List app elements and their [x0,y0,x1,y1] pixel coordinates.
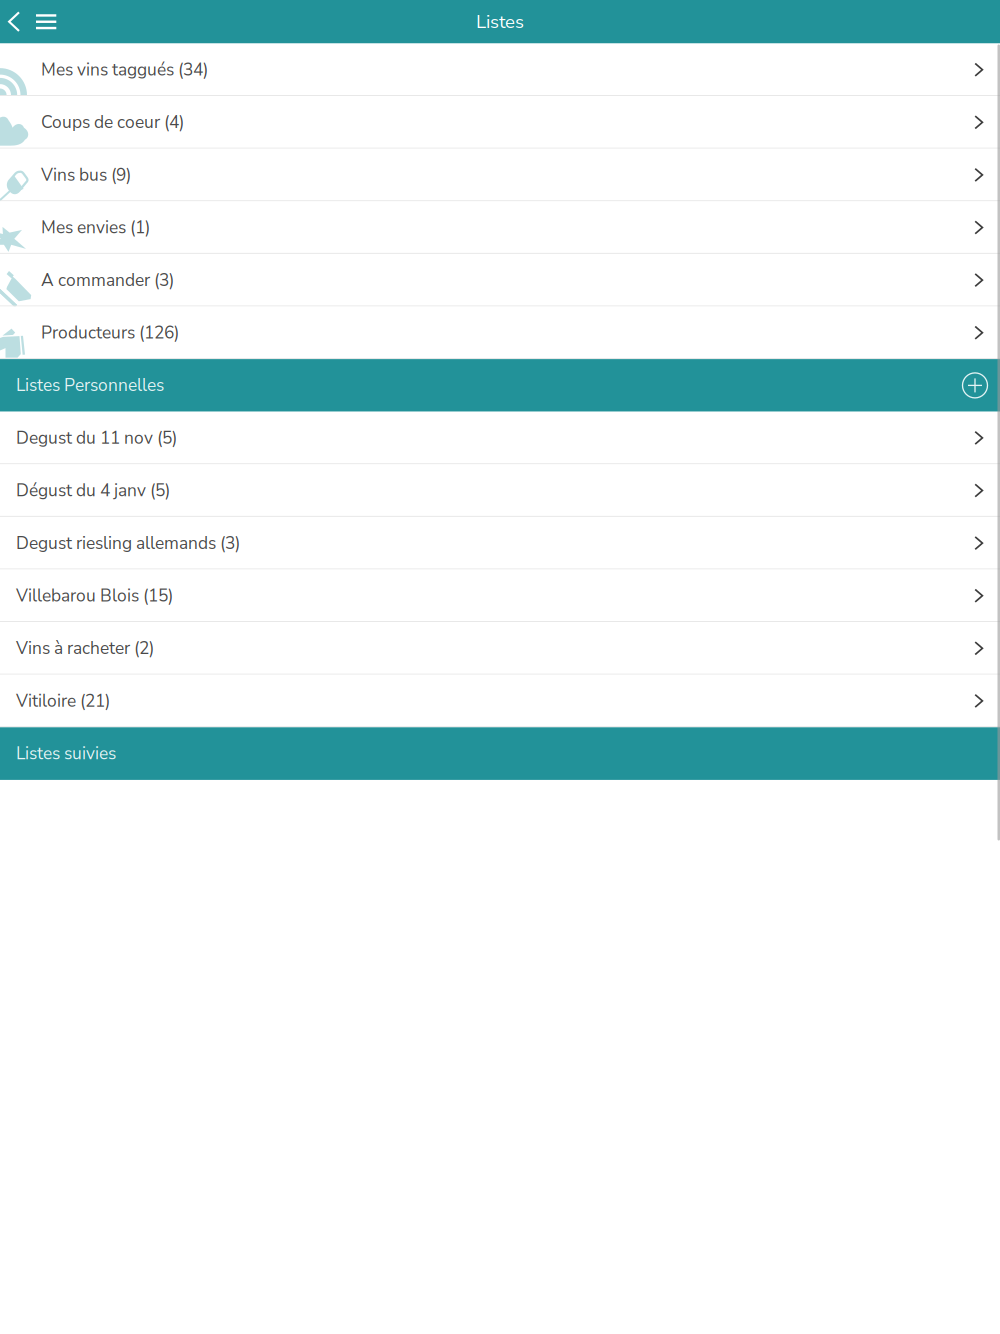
button[interactable]: Dégust du 4 janv (5) [0,464,1000,517]
staticText: Vitiloire (21) [16,689,110,713]
button[interactable]: Vins bus (9) [0,149,1000,201]
staticText: Degust riesling allemands (3) [16,531,240,555]
button[interactable]: Degust riesling allemands (3) [0,517,1000,569]
staticText: Villebarou Blois (15) [16,584,173,608]
button[interactable]: Menu [28,0,62,43]
staticText: Listes [476,9,524,34]
staticText: Mes envies (1) [41,216,150,239]
button[interactable]: A commander (3) [0,254,1000,306]
staticText: Coups de coeur (4) [41,111,184,134]
button[interactable]: Degust du 11 nov (5) [0,412,1000,464]
button[interactable]: Vitiloire (21) [0,675,1000,727]
staticText: Dégust du 4 janv (5) [16,479,170,502]
button[interactable]: Producteurs (126) [0,306,1000,359]
staticText: Mes vins taggués (34) [41,58,208,82]
button[interactable]: Mes envies (1) [0,201,1000,254]
staticText: Vins bus (9) [41,163,131,187]
button[interactable]: Vins à racheter (2) [0,622,1000,675]
button[interactable]: Retour [0,0,28,43]
staticText: Listes Personnelles [16,374,164,397]
button[interactable]: Mes vins taggués (34) [0,43,1000,96]
button[interactable]: Coups de coeur (4) [0,96,1000,149]
staticText: Degust du 11 nov (5) [16,426,177,450]
staticText: A commander (3) [41,268,174,292]
button[interactable]: Villebarou Blois (15) [0,569,1000,622]
staticText: Vins à racheter (2) [16,637,154,660]
staticText: Producteurs (126) [41,321,179,345]
button[interactable]: Ajouter une liste [958,368,992,402]
staticText: Listes suivies [16,742,116,765]
